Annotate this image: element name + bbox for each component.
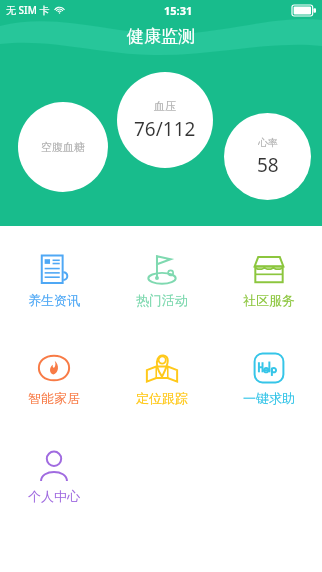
button[interactable]: 定位跟踪 (130, 348, 194, 408)
staticText: 空腹血糖 (41, 140, 85, 154)
button[interactable]: 心率 (224, 113, 311, 200)
staticText: 热门活动 (136, 292, 188, 308)
staticText: 定位跟踪 (136, 390, 188, 406)
staticText: 血压 (154, 99, 176, 113)
staticText: 无 SIM 卡 (6, 3, 50, 17)
staticText: 社区服务 (243, 292, 295, 308)
button[interactable]: 养生资讯 (22, 250, 86, 310)
button[interactable]: 智能家居 (22, 348, 86, 408)
button[interactable]: 血压 (117, 72, 213, 168)
staticText: 58 (257, 152, 279, 178)
staticText: 智能家居 (28, 390, 80, 406)
button[interactable]: 一键求助 (237, 348, 301, 408)
staticText: 心率 (258, 136, 278, 149)
staticText: 76/112 (134, 116, 196, 142)
staticText: 15:31 (164, 3, 193, 18)
button[interactable]: 社区服务 (237, 250, 301, 310)
staticText: 养生资讯 (28, 292, 80, 308)
button[interactable]: 热门活动 (130, 250, 194, 310)
button[interactable]: 个人中心 (22, 446, 86, 506)
staticText: 个人中心 (28, 488, 80, 504)
staticText: 一键求助 (243, 390, 295, 406)
staticText: 健康监测 (127, 26, 195, 47)
button[interactable]: 空腹血糖 (18, 102, 108, 192)
